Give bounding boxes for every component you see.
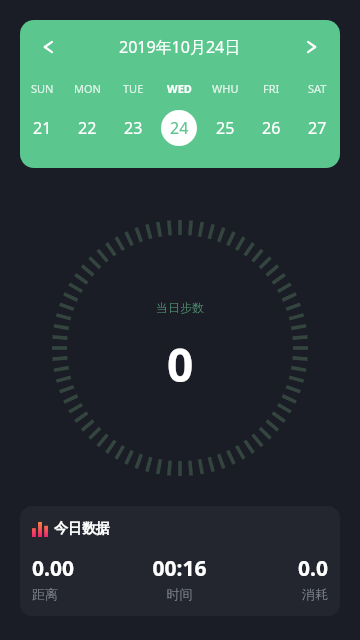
staticText: 00:16 bbox=[130, 554, 229, 583]
staticText: 2019年10月24日 bbox=[119, 36, 241, 58]
staticText: 距离 bbox=[32, 586, 130, 602]
button[interactable]: 24 bbox=[156, 108, 202, 148]
staticText: 今日数据 bbox=[54, 520, 110, 538]
staticText: 25 bbox=[216, 117, 235, 139]
staticText: WHU bbox=[212, 81, 239, 96]
staticText: 27 bbox=[308, 117, 327, 139]
staticText: 0.00 bbox=[32, 554, 130, 583]
staticText: MON bbox=[74, 81, 101, 96]
staticText: 22 bbox=[78, 117, 97, 139]
staticText: WED bbox=[167, 81, 192, 96]
button[interactable]: Next day bbox=[284, 20, 340, 74]
staticText: 当日步数 bbox=[156, 300, 204, 315]
button[interactable]: 2019年10月24日 bbox=[76, 20, 284, 74]
button[interactable]: 26 bbox=[248, 108, 294, 148]
staticText: TUE bbox=[123, 81, 144, 96]
staticText: 消耗 bbox=[229, 586, 328, 602]
button[interactable]: Previous day bbox=[20, 20, 76, 74]
staticText: 时间 bbox=[130, 586, 229, 602]
button[interactable]: 22 bbox=[65, 108, 110, 148]
staticText: 0.0 bbox=[229, 554, 328, 583]
staticText: 24 bbox=[170, 117, 189, 139]
button[interactable]: 21 bbox=[20, 108, 65, 148]
button[interactable]: 25 bbox=[202, 108, 248, 148]
button[interactable]: 27 bbox=[294, 108, 340, 148]
button[interactable]: 今日数据 bbox=[20, 506, 340, 616]
staticText: 26 bbox=[262, 117, 281, 139]
staticText: 21 bbox=[33, 117, 52, 139]
staticText: SUN bbox=[31, 81, 54, 96]
staticText: FRI bbox=[263, 81, 280, 96]
button[interactable]: 23 bbox=[110, 108, 156, 148]
staticText: 0 bbox=[167, 333, 194, 396]
staticText: SAT bbox=[308, 81, 327, 96]
staticText: 23 bbox=[124, 117, 143, 139]
